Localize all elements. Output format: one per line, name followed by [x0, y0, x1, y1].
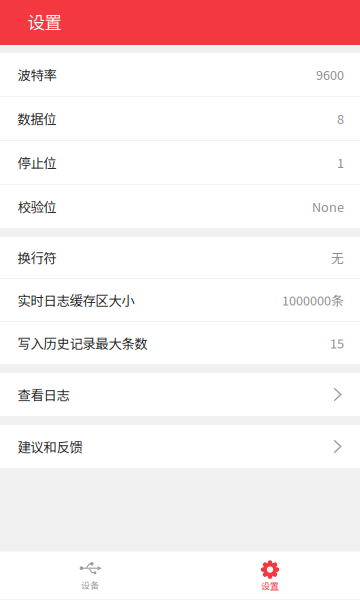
staticText: 9600: [316, 65, 344, 84]
staticText: None: [312, 197, 344, 216]
staticText: 停止位: [17, 153, 56, 172]
staticText: 设备: [81, 578, 99, 591]
staticText: 实时日志缓存区大小: [17, 290, 134, 310]
staticText: 1000000条: [282, 291, 344, 309]
staticText: 波特率: [17, 65, 56, 84]
staticText: 8: [337, 109, 344, 128]
button[interactable]: 实时日志缓存区大小: [0, 279, 360, 321]
button[interactable]: 校验位: [0, 185, 360, 228]
button[interactable]: 设置: [180, 552, 360, 599]
staticText: 校验位: [17, 197, 56, 216]
staticText: 建议和反馈: [17, 437, 82, 456]
button[interactable]: 波特率: [0, 53, 360, 96]
button[interactable]: 设备: [0, 552, 180, 599]
staticText: 15: [330, 334, 344, 352]
staticText: 设置: [261, 579, 279, 592]
button[interactable]: 数据位: [0, 97, 360, 140]
staticText: 换行符: [17, 248, 56, 267]
button[interactable]: 换行符: [0, 237, 360, 278]
button[interactable]: 写入历史记录最大条数: [0, 322, 360, 364]
button[interactable]: 建议和反馈: [0, 425, 360, 468]
staticText: 查看日志: [17, 385, 69, 404]
button[interactable]: 停止位: [0, 141, 360, 184]
staticText: 设置: [27, 9, 61, 34]
staticText: 写入历史记录最大条数: [17, 333, 147, 353]
staticText: 1: [337, 153, 344, 172]
staticText: 无: [331, 248, 344, 267]
button[interactable]: 查看日志: [0, 373, 360, 416]
staticText: 数据位: [17, 109, 56, 128]
